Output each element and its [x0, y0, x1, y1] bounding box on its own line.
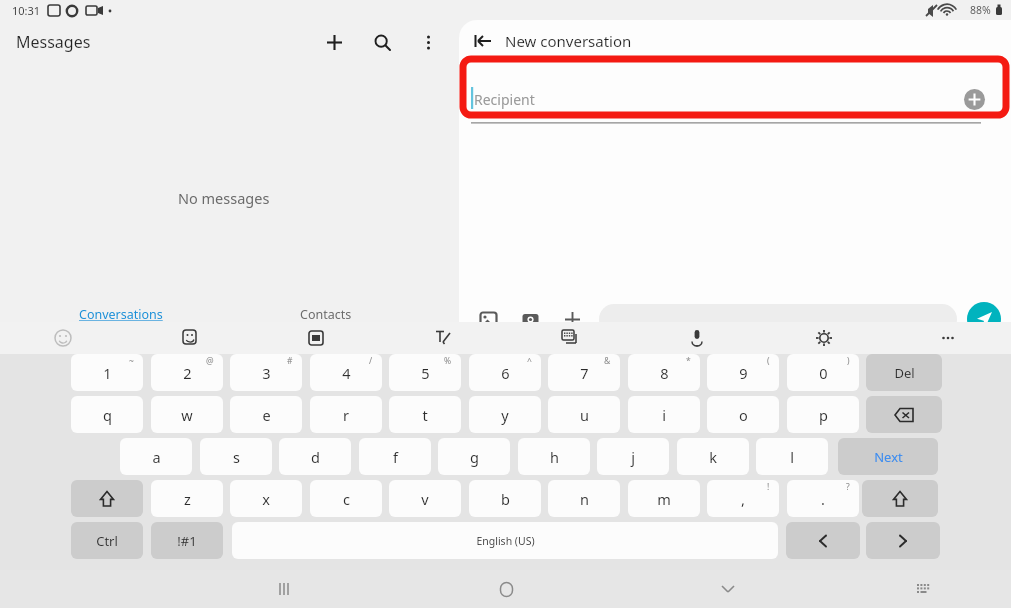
staticText: 9: [739, 363, 748, 383]
staticText: p: [819, 405, 828, 425]
button[interactable]: [786, 522, 860, 559]
button[interactable]: [866, 522, 940, 559]
staticText: No messages: [178, 188, 270, 208]
button[interactable]: 9: [707, 354, 779, 391]
staticText: 7: [580, 363, 589, 383]
button[interactable]: Home: [485, 570, 527, 608]
button[interactable]: New message: [317, 25, 351, 59]
button[interactable]: Del: [866, 354, 942, 391]
staticText: m: [657, 489, 671, 509]
button[interactable]: Hide keyboard: [707, 570, 749, 608]
button[interactable]: w: [151, 396, 223, 433]
button[interactable]: b: [469, 480, 541, 517]
button[interactable]: h: [518, 438, 590, 475]
staticText: ?: [846, 481, 850, 493]
button[interactable]: Clipboard: [554, 322, 586, 354]
button[interactable]: GIF: [300, 322, 332, 354]
button[interactable]: Attach picture: [471, 302, 505, 322]
button[interactable]: Stickers: [174, 322, 206, 354]
staticText: g: [470, 447, 479, 467]
button[interactable]: Search: [365, 25, 399, 59]
button[interactable]: o: [707, 396, 779, 433]
staticText: .: [821, 489, 825, 509]
button[interactable]: Settings: [808, 322, 840, 354]
button[interactable]: Next: [838, 438, 938, 475]
button[interactable]: y: [469, 396, 541, 433]
staticText: 2: [183, 363, 192, 383]
button[interactable]: 2: [151, 354, 223, 391]
button[interactable]: More: [932, 322, 964, 354]
staticText: r: [343, 405, 349, 425]
staticText: 4: [342, 363, 351, 383]
staticText: !: [767, 481, 770, 493]
staticText: #: [287, 355, 293, 367]
button[interactable]: d: [279, 438, 351, 475]
button[interactable]: Voice input: [681, 322, 713, 354]
staticText: x: [262, 489, 270, 509]
button[interactable]: Ctrl: [71, 522, 143, 559]
button[interactable]: 6: [469, 354, 541, 391]
button[interactable]: !#1: [151, 522, 223, 559]
staticText: *: [686, 355, 691, 367]
button[interactable]: [71, 480, 143, 517]
button[interactable]: English (US): [232, 522, 778, 559]
button[interactable]: Conversations: [79, 306, 163, 323]
staticText: w: [181, 405, 193, 425]
button[interactable]: Add attachment: [555, 302, 589, 322]
staticText: @: [206, 355, 214, 367]
button[interactable]: s: [200, 438, 272, 475]
button[interactable]: Contacts: [300, 306, 352, 323]
button[interactable]: r: [310, 396, 382, 433]
staticText: k: [709, 447, 717, 467]
button[interactable]: f: [359, 438, 431, 475]
staticText: s: [233, 447, 240, 467]
button[interactable]: e: [230, 396, 302, 433]
button[interactable]: 7: [548, 354, 620, 391]
button[interactable]: p: [787, 396, 859, 433]
button[interactable]: z: [151, 480, 223, 517]
staticText: l: [790, 447, 794, 467]
button[interactable]: j: [597, 438, 669, 475]
button[interactable]: 5: [389, 354, 461, 391]
staticText: Messages: [16, 31, 91, 53]
button[interactable]: t: [389, 396, 461, 433]
button[interactable]: [866, 396, 942, 433]
button[interactable]: c: [310, 480, 382, 517]
button[interactable]: k: [677, 438, 749, 475]
button[interactable]: Send: [967, 302, 1001, 322]
staticText: d: [311, 447, 320, 467]
button[interactable]: Keyboard layout: [902, 570, 944, 608]
button[interactable]: Emoji: [47, 322, 79, 354]
staticText: 3: [262, 363, 271, 383]
button[interactable]: g: [438, 438, 510, 475]
button[interactable]: i: [628, 396, 700, 433]
button[interactable]: m: [628, 480, 700, 517]
button[interactable]: [862, 480, 938, 517]
button[interactable]: Add recipient: [959, 84, 989, 114]
button[interactable]: x: [230, 480, 302, 517]
button[interactable]: 1: [71, 354, 143, 391]
button[interactable]: ,: [707, 480, 779, 517]
button[interactable]: 4: [310, 354, 382, 391]
button[interactable]: Camera: [513, 302, 547, 322]
button[interactable]: Recents: [263, 570, 305, 608]
button[interactable]: 8: [628, 354, 700, 391]
button[interactable]: 3: [230, 354, 302, 391]
staticText: q: [103, 405, 112, 425]
button[interactable]: n: [548, 480, 620, 517]
button[interactable]: .: [787, 480, 859, 517]
button[interactable]: l: [756, 438, 828, 475]
button[interactable]: v: [389, 480, 461, 517]
button[interactable]: q: [71, 396, 143, 433]
button[interactable]: 0: [787, 354, 859, 391]
staticText: Ctrl: [96, 532, 118, 550]
button[interactable]: Handwriting: [427, 322, 459, 354]
staticText: 10:31: [12, 3, 41, 18]
button[interactable]: Back: [471, 29, 632, 53]
button[interactable]: u: [548, 396, 620, 433]
button[interactable]: a: [120, 438, 192, 475]
staticText: e: [262, 405, 271, 425]
staticText: h: [550, 447, 559, 467]
button[interactable]: More options: [411, 25, 445, 59]
